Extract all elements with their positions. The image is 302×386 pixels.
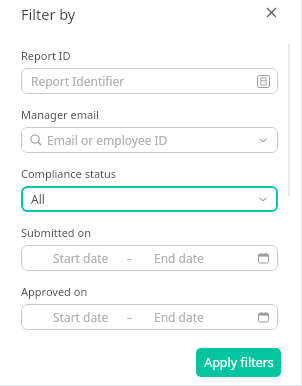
staticText: Email or employee ID bbox=[47, 132, 168, 148]
staticText: – bbox=[127, 251, 132, 265]
staticText: Start date bbox=[53, 250, 109, 266]
staticText: Report Identifier bbox=[31, 73, 125, 89]
staticText: End date bbox=[154, 250, 204, 266]
button[interactable]: Pick date range bbox=[257, 311, 269, 323]
staticText: Report ID bbox=[21, 48, 71, 63]
button[interactable]: Pick date range bbox=[257, 252, 269, 264]
staticText: End date bbox=[154, 309, 204, 325]
staticText: Start date bbox=[53, 309, 109, 325]
staticText: Submitted on bbox=[21, 225, 91, 240]
button[interactable]: Start date bbox=[21, 245, 278, 271]
button[interactable]: Start date bbox=[21, 304, 278, 330]
button[interactable]: Scan report identifier bbox=[254, 72, 272, 90]
button[interactable]: Report Identifier bbox=[21, 68, 278, 94]
staticText: Approved on bbox=[21, 284, 88, 299]
staticText: – bbox=[127, 310, 132, 324]
button[interactable]: Open compliance status list bbox=[257, 193, 269, 205]
staticText: Manager email bbox=[21, 107, 99, 122]
staticText: All bbox=[31, 191, 45, 207]
button[interactable]: Email or employee ID bbox=[21, 127, 278, 153]
button[interactable]: Apply filters bbox=[196, 348, 281, 377]
button[interactable]: All bbox=[21, 186, 278, 212]
staticText: Filter by bbox=[21, 4, 76, 24]
button[interactable]: Open manager list bbox=[257, 134, 269, 146]
button[interactable]: Close bbox=[262, 3, 280, 21]
staticText: Compliance status bbox=[21, 166, 117, 181]
staticText: Apply filters bbox=[204, 354, 274, 371]
